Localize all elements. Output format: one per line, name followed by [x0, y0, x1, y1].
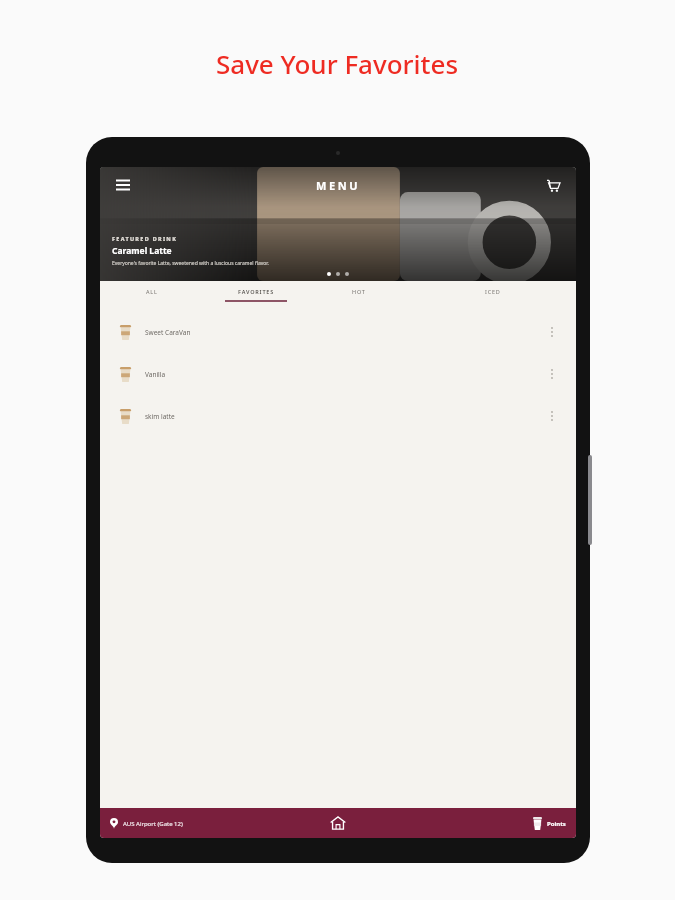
staticText: Points [547, 820, 566, 828]
button[interactable]: skim latte [100, 405, 576, 427]
staticText: FEATURED DRINK [112, 235, 178, 242]
staticText: Save Your Favorites [216, 46, 459, 81]
staticText: Everyone's favorite Latte, sweetened wit… [112, 260, 269, 267]
button[interactable]: ICED [410, 281, 576, 307]
staticText: ICED [485, 288, 501, 295]
button[interactable]: More options [544, 408, 560, 424]
staticText: HOT [352, 288, 366, 295]
button[interactable]: ALL [100, 281, 204, 307]
staticText: Sweet CaraVan [145, 328, 191, 337]
button[interactable]: AUS Airport (Gate 12) [110, 818, 183, 829]
button[interactable]: More options [544, 324, 560, 340]
button[interactable]: Home [325, 810, 351, 836]
staticText: FAVORITES [238, 288, 275, 295]
staticText: AUS Airport (Gate 12) [123, 820, 183, 828]
button[interactable]: Points [533, 817, 566, 830]
staticText: ALL [146, 288, 158, 295]
staticText: Vanilla [145, 370, 166, 379]
button[interactable]: More options [544, 366, 560, 382]
button[interactable]: Menu [110, 172, 136, 198]
button[interactable]: HOT [307, 281, 410, 307]
button[interactable]: Vanilla [100, 363, 576, 385]
staticText: MENU [316, 178, 361, 193]
button[interactable]: Cart [540, 172, 566, 198]
staticText: Caramel Latte [112, 245, 172, 257]
button[interactable]: Sweet CaraVan [100, 321, 576, 343]
button[interactable]: FAVORITES [204, 281, 307, 307]
staticText: skim latte [145, 412, 175, 421]
